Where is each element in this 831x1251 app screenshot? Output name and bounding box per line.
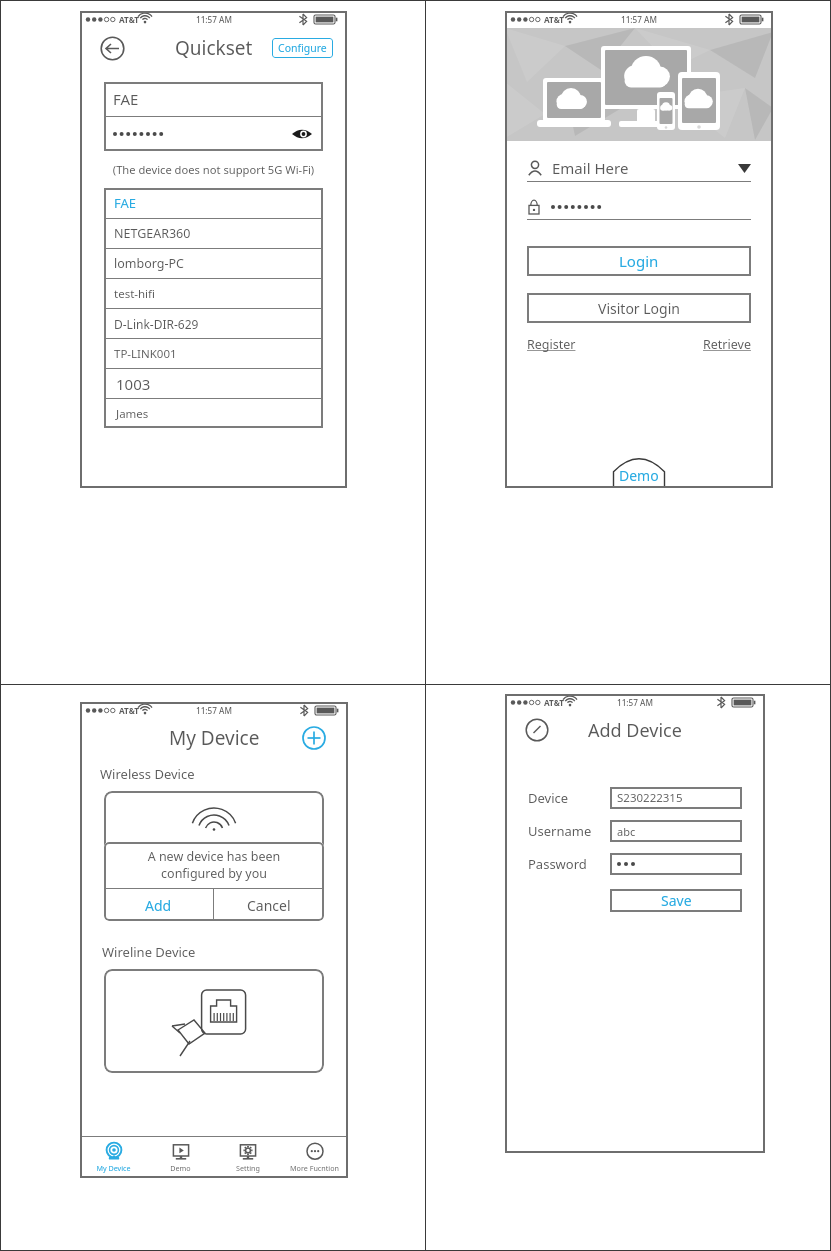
staticText: My Device: [169, 725, 260, 751]
button[interactable]: S230222315: [610, 787, 742, 809]
staticText: S230222315: [617, 790, 683, 806]
button[interactable]: [527, 195, 751, 219]
button[interactable]: James: [104, 399, 323, 428]
staticText: NETGEAR360: [114, 225, 191, 242]
button[interactable]: abc: [610, 820, 742, 842]
staticText: AT&T: [544, 14, 565, 25]
staticText: abc: [617, 824, 636, 839]
staticText: TP-LINK001: [114, 346, 177, 362]
staticText: FAE: [113, 89, 139, 109]
button[interactable]: FAE: [104, 82, 323, 116]
staticText: Add: [145, 896, 172, 915]
staticText: Add Device: [588, 718, 682, 743]
button[interactable]: FAE: [104, 188, 323, 218]
button[interactable]: Register: [527, 336, 576, 353]
staticText: Wireless Device: [100, 765, 195, 783]
staticText: 11:57 AM: [617, 697, 653, 708]
staticText: 11:57 AM: [196, 705, 232, 716]
button[interactable]: TP-LINK001: [104, 339, 323, 368]
button[interactable]: NETGEAR360: [104, 219, 323, 248]
button[interactable]: Back: [525, 718, 549, 742]
staticText: Quickset: [175, 35, 253, 61]
button[interactable]: 1003: [104, 369, 323, 398]
button[interactable]: [610, 853, 742, 875]
staticText: Setting: [236, 1163, 260, 1173]
staticText: Device: [528, 789, 610, 807]
staticText: Demo: [619, 466, 659, 485]
button[interactable]: Cancel: [214, 889, 324, 921]
staticText: lomborg-PC: [114, 255, 184, 272]
staticText: 11:57 AM: [621, 14, 657, 25]
button[interactable]: Setting: [214, 1137, 281, 1178]
staticText: test-hifi: [114, 286, 155, 302]
button[interactable]: Add device: [302, 726, 326, 750]
button[interactable]: [104, 791, 324, 885]
button[interactable]: test-hifi: [104, 279, 323, 308]
staticText: Email Here: [552, 158, 629, 178]
staticText: 11:57 AM: [196, 14, 232, 25]
button[interactable]: My Device: [80, 1137, 147, 1178]
button[interactable]: Configure: [272, 38, 333, 58]
staticText: AT&T: [119, 705, 140, 716]
staticText: 1003: [116, 374, 151, 394]
staticText: Username: [528, 822, 610, 840]
button[interactable]: Add: [104, 889, 213, 921]
staticText: Configure: [278, 41, 327, 55]
staticText: Cancel: [247, 896, 291, 915]
staticText: A new device has been configured by you: [116, 848, 312, 882]
button[interactable]: Back: [100, 36, 125, 61]
staticText: (The device does not support 5G Wi-Fi): [98, 162, 329, 177]
staticText: Save: [661, 891, 692, 910]
button[interactable]: Login: [527, 246, 751, 276]
staticText: Login: [619, 251, 659, 271]
staticText: FAE: [114, 194, 137, 212]
button[interactable]: D-Link-DIR-629: [104, 309, 323, 338]
button[interactable]: lomborg-PC: [104, 249, 323, 278]
button[interactable]: Visitor Login: [527, 293, 751, 323]
staticText: Wireline Device: [102, 943, 196, 961]
staticText: More Fucntion: [290, 1163, 339, 1173]
button[interactable]: Demo: [147, 1137, 214, 1178]
button[interactable]: Retrieve: [703, 336, 751, 353]
staticText: Retrieve: [703, 336, 751, 353]
staticText: James: [116, 406, 149, 422]
staticText: Demo: [170, 1163, 191, 1173]
staticText: AT&T: [544, 697, 565, 708]
button[interactable]: Email Here: [527, 155, 751, 181]
staticText: Password: [528, 855, 610, 873]
button[interactable]: [104, 969, 324, 1073]
button[interactable]: Demo: [612, 454, 666, 488]
staticText: Register: [527, 336, 576, 353]
button[interactable]: Show password: [104, 117, 323, 151]
button[interactable]: Show password: [291, 127, 313, 141]
staticText: D-Link-DIR-629: [114, 316, 199, 332]
staticText: Visitor Login: [598, 299, 680, 318]
staticText: My Device: [96, 1163, 131, 1173]
button[interactable]: More Fucntion: [281, 1137, 348, 1178]
button[interactable]: Save: [610, 889, 742, 912]
staticText: AT&T: [119, 14, 140, 25]
